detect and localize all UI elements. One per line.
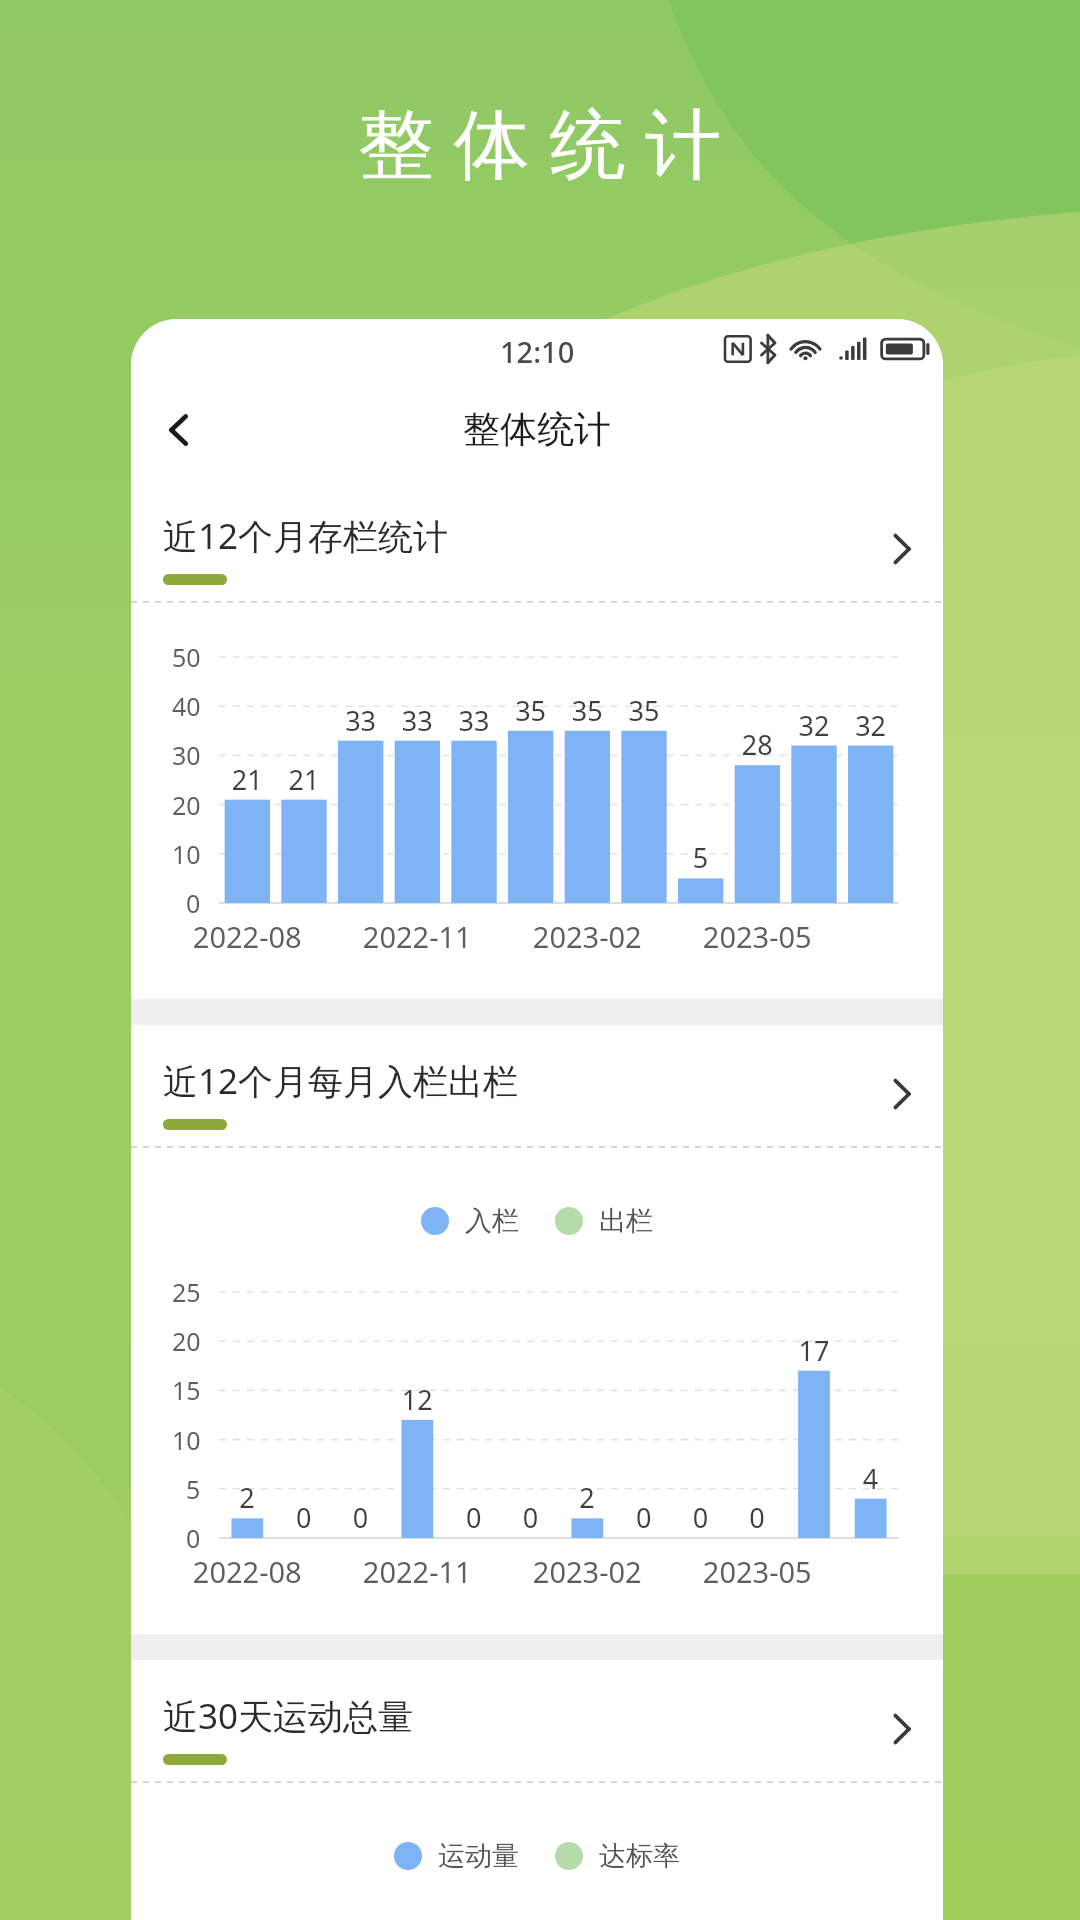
staticText: 整体统计: [463, 406, 611, 453]
staticText: 整 体 统 计: [358, 90, 722, 194]
button[interactable]: 近12个月存栏统计: [131, 480, 943, 601]
staticText: 12:10: [500, 332, 575, 371]
button[interactable]: Back: [143, 393, 217, 467]
staticText: 运动量: [438, 1839, 519, 1873]
staticText: 近12个月每月入栏出栏: [163, 1057, 519, 1105]
button[interactable]: 近12个月每月入栏出栏: [131, 1025, 943, 1146]
staticText: 近30天运动总量: [163, 1692, 414, 1740]
staticText: 出栏: [599, 1204, 653, 1238]
staticText: 达标率: [599, 1839, 680, 1873]
staticText: 近12个月存栏统计: [163, 512, 449, 560]
staticText: 入栏: [465, 1204, 519, 1238]
button[interactable]: 近30天运动总量: [131, 1660, 943, 1781]
